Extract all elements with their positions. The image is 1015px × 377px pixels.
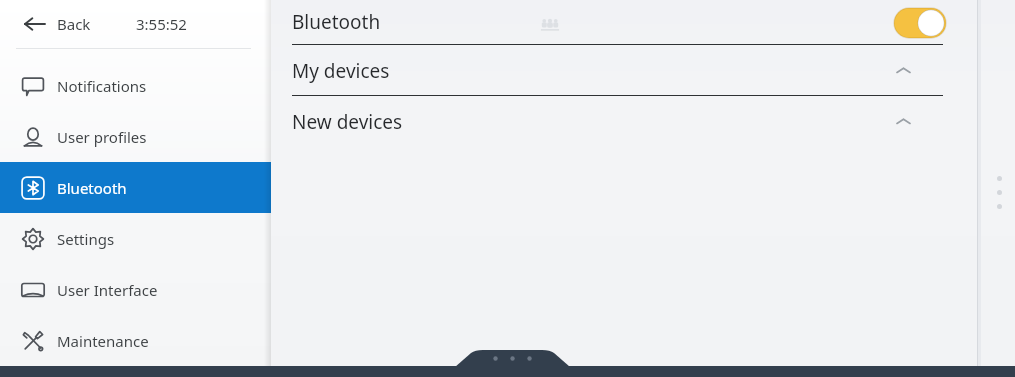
button[interactable]: Maintenance bbox=[0, 315, 271, 366]
button[interactable]: Back bbox=[0, 0, 271, 48]
staticText: My devices bbox=[292, 58, 390, 84]
staticText: User profiles bbox=[57, 127, 147, 147]
button[interactable]: Notifications bbox=[0, 60, 271, 111]
staticText: User Interface bbox=[57, 280, 158, 300]
button[interactable]: Bluetooth bbox=[0, 162, 271, 213]
staticText: Settings bbox=[57, 229, 115, 249]
staticText: Bluetooth bbox=[292, 9, 381, 35]
button[interactable]: New devices bbox=[0, 96, 1015, 147]
button[interactable]: Settings bbox=[0, 213, 271, 264]
staticText: Bluetooth bbox=[57, 178, 127, 198]
button[interactable]: User profiles bbox=[0, 111, 271, 162]
staticText: 3:55:52 bbox=[136, 14, 187, 34]
staticText: New devices bbox=[292, 109, 403, 135]
staticText: Notifications bbox=[57, 76, 147, 96]
staticText: Maintenance bbox=[57, 331, 149, 351]
button[interactable]: User Interface bbox=[0, 264, 271, 315]
button[interactable]: Bluetooth on bbox=[894, 8, 946, 38]
staticText: Back bbox=[57, 14, 91, 34]
button[interactable]: Bluetooth bbox=[0, 0, 1015, 45]
button[interactable]: My devices bbox=[0, 45, 1015, 96]
